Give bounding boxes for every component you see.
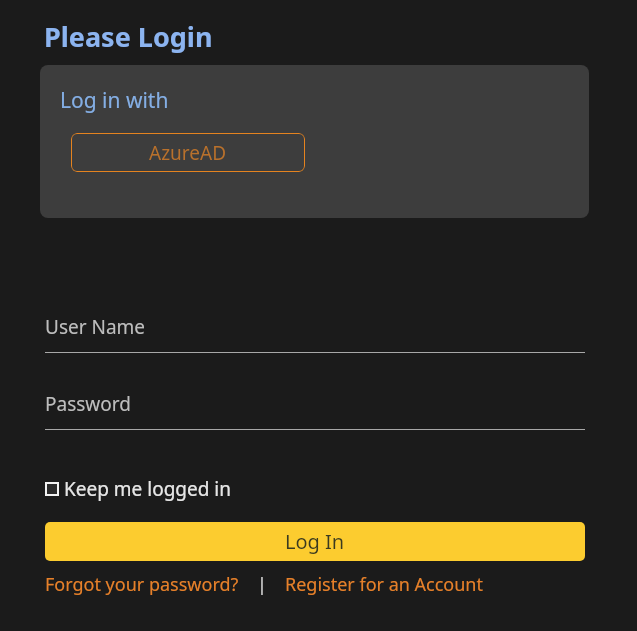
staticText: Keep me logged in [64,476,231,502]
staticText: AzureAD [149,140,227,166]
staticText: User Name [45,314,146,340]
button[interactable]: User Name [45,314,585,353]
staticText: Log in with [60,86,169,115]
button[interactable]: AzureAD [71,133,305,172]
staticText: | [257,572,267,597]
staticText: Log In [285,528,345,555]
staticText: Register for an Account [285,572,483,597]
button[interactable]: Forgot your password? [45,572,239,597]
button[interactable]: Log In [45,522,585,561]
staticText: Password [45,391,131,417]
button[interactable]: Password [45,391,585,430]
button[interactable]: Keep me logged in [45,476,231,502]
button[interactable]: Register for an Account [285,572,483,597]
staticText: Forgot your password? [45,572,239,597]
staticText: Please Login [44,18,213,55]
